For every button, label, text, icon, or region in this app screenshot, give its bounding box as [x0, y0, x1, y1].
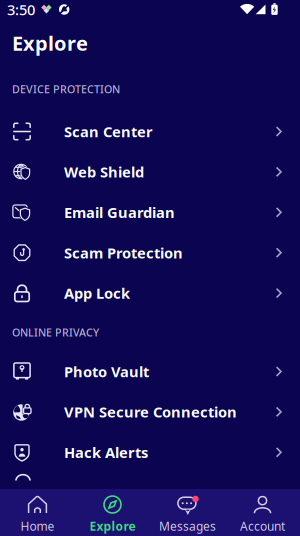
button[interactable]: VPN Secure Connection — [0, 392, 300, 432]
button[interactable]: Scam Protection — [0, 232, 300, 273]
staticText: Explore — [89, 518, 135, 534]
staticText: Account — [240, 518, 285, 534]
staticText: Scam Protection — [64, 243, 183, 262]
button[interactable]: Home — [0, 489, 75, 536]
button[interactable]: App Lock — [0, 273, 300, 313]
staticText: Hack Alerts — [64, 443, 148, 462]
button[interactable]: Explore — [75, 489, 150, 536]
staticText: Web Shield — [64, 162, 144, 182]
button[interactable]: Web Shield — [0, 152, 300, 192]
staticText: Explore — [12, 30, 88, 56]
button[interactable]: Photo Vault — [0, 351, 300, 392]
staticText: App Lock — [64, 283, 130, 303]
staticText: DEVICE PROTECTION — [12, 82, 120, 96]
staticText: ONLINE PRIVACY — [12, 325, 99, 339]
staticText: 3:50 — [7, 0, 35, 19]
button[interactable]: Scan Center — [0, 111, 300, 152]
button[interactable]: Hack Alerts — [0, 432, 300, 472]
button[interactable]: Messages — [150, 489, 225, 536]
staticText: Scan Center — [64, 122, 153, 141]
staticText: Email Guardian — [64, 203, 175, 222]
staticText: Home — [20, 518, 54, 534]
staticText: Photo Vault — [64, 362, 149, 381]
staticText: VPN Secure Connection — [64, 402, 237, 422]
button[interactable]: Account — [225, 489, 300, 536]
staticText: Messages — [159, 518, 216, 534]
button[interactable]: Email Guardian — [0, 192, 300, 232]
